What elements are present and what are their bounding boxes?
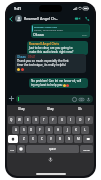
button[interactable]: M (74, 135, 82, 143)
staticText: 9:41 (14, 6, 22, 11)
staticText: Rosewell Angel Chris (29, 42, 59, 46)
staticText: R (35, 118, 37, 122)
button[interactable]: U (58, 116, 66, 124)
staticText: H (57, 128, 60, 132)
staticText: space (49, 147, 57, 151)
staticText: Okaaa (17, 55, 28, 59)
staticText: F (39, 128, 41, 132)
button[interactable]: Okaaa (15, 54, 86, 73)
staticText: No problem! Can let me know ok, will (31, 79, 82, 83)
staticText: B (59, 137, 61, 141)
button[interactable]: Emoji (17, 145, 25, 153)
staticText: D (30, 128, 33, 132)
button[interactable]: Backspace (83, 135, 93, 143)
button[interactable]: Dictate (47, 156, 54, 163)
button[interactable]: R (32, 116, 39, 124)
staticText: S (23, 128, 25, 132)
button[interactable]: Y (49, 116, 57, 124)
staticText: return (83, 148, 91, 151)
button[interactable]: Shift (8, 135, 18, 143)
staticText: P (88, 118, 90, 122)
staticText: 123 (10, 148, 15, 151)
button[interactable]: Rosewell Angel Chris (27, 41, 88, 55)
button[interactable]: Attach (8, 95, 15, 102)
button[interactable]: E (24, 116, 31, 124)
button[interactable]: C (38, 135, 46, 143)
staticText: Y (52, 118, 54, 122)
staticText: A (15, 128, 17, 132)
button[interactable]: 123 (8, 145, 16, 153)
staticText: Just to be clear, are you going to (29, 46, 73, 50)
staticText: Q (10, 118, 13, 122)
staticText: C (41, 137, 43, 141)
button[interactable]: Okay (7, 105, 36, 113)
button[interactable]: W (16, 116, 23, 124)
button[interactable]: Q (8, 116, 15, 124)
staticText: X (32, 137, 34, 141)
staticText: O (79, 118, 82, 122)
staticText: W (18, 118, 21, 122)
button[interactable]: S (20, 126, 27, 134)
staticText: V (50, 137, 52, 141)
staticText: make this audio track right now? (29, 50, 74, 54)
button[interactable]: Okay (36, 105, 65, 113)
button[interactable]: K (72, 126, 80, 134)
button[interactable]: H (54, 126, 62, 134)
button[interactable]: return (80, 145, 93, 153)
staticText: Okay (47, 107, 54, 111)
staticText: G (48, 128, 51, 132)
button[interactable] (16, 95, 93, 103)
staticText: K (75, 128, 77, 132)
staticText: I (70, 118, 72, 122)
staticText: time the technique, its really helpful (17, 63, 66, 67)
button[interactable]: I (67, 116, 75, 124)
button[interactable]: Video call (74, 15, 81, 22)
staticText: Z (23, 137, 25, 141)
button[interactable]: J (63, 126, 71, 134)
button[interactable]: O (76, 116, 84, 124)
button[interactable]: Call (84, 15, 91, 22)
staticText: N (68, 137, 71, 141)
button[interactable]: F (36, 126, 44, 134)
button[interactable]: Z (19, 135, 28, 143)
button[interactable]: V (47, 135, 55, 143)
staticText: T (43, 118, 45, 122)
staticText: 09:41 (28, 55, 36, 59)
button[interactable]: T (40, 116, 48, 124)
button[interactable]: N (65, 135, 73, 143)
button[interactable]: D (28, 126, 35, 134)
button[interactable]: No problem! Can let me know ok, will (29, 78, 88, 88)
button[interactable]: P (85, 116, 93, 124)
button[interactable]: B (56, 135, 64, 143)
button[interactable]: space (26, 145, 79, 153)
staticText: Okaaa (33, 32, 82, 37)
staticText: M (77, 137, 80, 141)
staticText: Rosewell Angel Ch... (24, 16, 74, 21)
button[interactable]: A (12, 126, 19, 134)
button[interactable]: Back (8, 16, 14, 22)
staticText: Ok (78, 107, 82, 111)
button[interactable]: Rosewell Angel Chris (31, 24, 90, 38)
staticText: U (61, 118, 64, 122)
staticText: Rosewell Angel Chris (34, 25, 58, 28)
button[interactable]: X (29, 135, 37, 143)
staticText: 09:41 (82, 34, 88, 37)
staticText: Okay (18, 107, 25, 111)
button[interactable]: Ok (65, 105, 94, 113)
staticText: simple, sound wave effect (34, 28, 64, 31)
staticText: E (27, 118, 29, 122)
button[interactable]: G (45, 126, 53, 134)
staticText: Thank you so much especially the first (17, 59, 69, 63)
button[interactable]: L (81, 126, 89, 134)
staticText: J (67, 128, 68, 132)
staticText: L (84, 128, 86, 132)
staticText: try my best to help you (31, 83, 63, 87)
